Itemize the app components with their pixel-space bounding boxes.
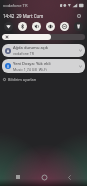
staticText: vodafone TR <box>3 3 28 9</box>
button[interactable]: Wi-Fi <box>4 22 13 31</box>
staticText: 14:42 29 Mart Cum <box>3 13 44 19</box>
button[interactable]: Yeni Dosya: Yük ekli <box>2 59 85 73</box>
button[interactable]: Brightness <box>2 34 85 40</box>
button[interactable]: Back <box>62 172 76 182</box>
button[interactable]: Settings <box>75 12 83 20</box>
staticText: Music 1,74 GB Wi-Fi <box>13 67 47 72</box>
staticText: Ağda durumu açık <box>13 45 48 50</box>
button[interactable]: Ağda durumu açık <box>2 44 85 57</box>
button[interactable]: Do not disturb <box>60 22 69 31</box>
button[interactable]: Sound <box>32 22 41 31</box>
button[interactable]: Bluetooth <box>18 22 27 31</box>
staticText: Bildirim ayarları <box>8 77 37 82</box>
button[interactable]: Bildirim ayarları <box>3 75 87 83</box>
button[interactable]: Vibrate <box>46 22 55 31</box>
staticText: Yeni Dosya: Yük ekli <box>13 61 51 66</box>
button[interactable]: Home <box>37 172 51 182</box>
button[interactable]: Flashlight <box>74 22 83 31</box>
staticText: vodafone TR <box>13 51 35 56</box>
button[interactable]: Recents <box>11 172 25 182</box>
